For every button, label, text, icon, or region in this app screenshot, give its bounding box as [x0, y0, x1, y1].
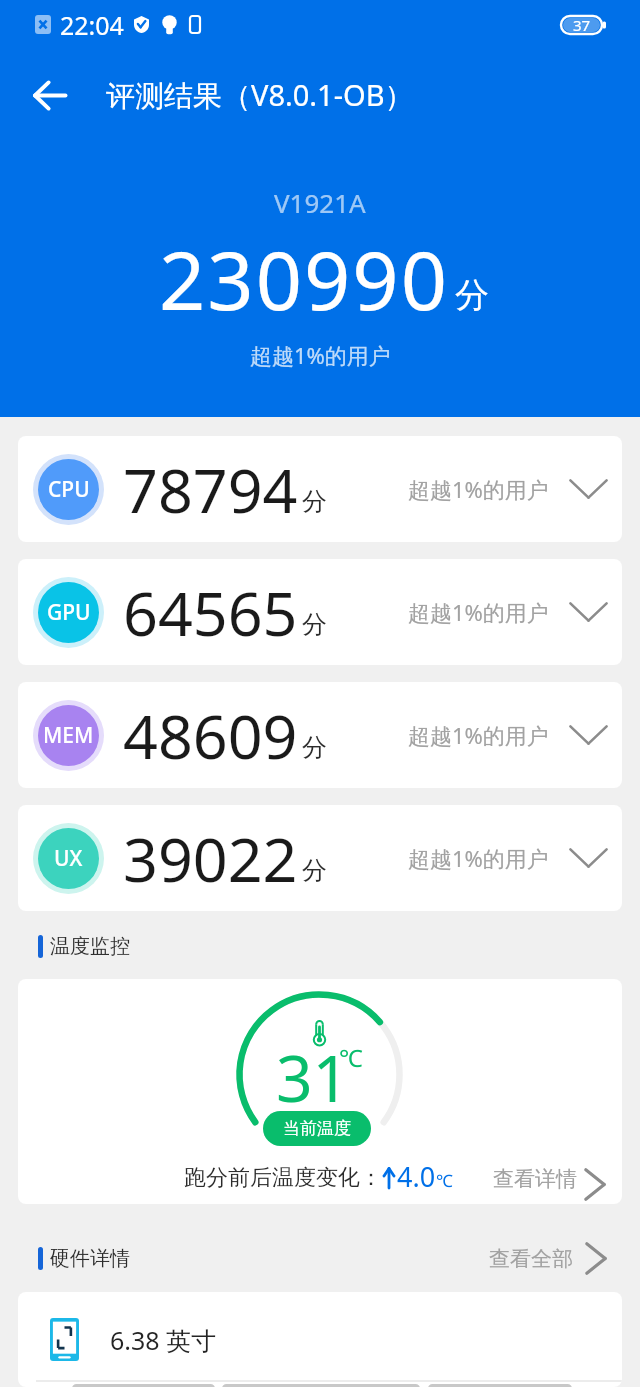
staticText: 超越1%的用户: [408, 843, 549, 873]
staticText: MEM: [43, 721, 94, 750]
staticText: 当前温度: [283, 1118, 351, 1139]
staticText: 温度监控: [50, 934, 130, 959]
staticText: 查看全部: [489, 1246, 573, 1272]
staticText: 超越1%的用户: [250, 340, 391, 370]
staticText: ℃: [339, 1041, 363, 1074]
button[interactable]: Expand: [566, 467, 610, 511]
staticText: 硬件详情: [50, 1246, 130, 1271]
button[interactable]: Back: [0, 56, 100, 134]
staticText: 分: [302, 609, 327, 640]
staticText: 分: [455, 274, 489, 317]
button[interactable]: Expand: [566, 590, 610, 634]
button[interactable]: 查看全部: [489, 1242, 607, 1275]
staticText: 230990: [159, 223, 449, 333]
staticText: 4.0: [397, 1158, 436, 1195]
button[interactable]: CPU: [18, 436, 622, 542]
button[interactable]: MEM: [18, 682, 622, 788]
staticText: 31: [276, 1034, 350, 1121]
staticText: 超越1%的用户: [408, 474, 549, 504]
button[interactable]: 当前温度: [263, 1111, 371, 1146]
staticText: 查看详情: [493, 1166, 577, 1192]
button[interactable]: Expand: [566, 836, 610, 880]
staticText: 48609: [123, 694, 298, 777]
staticText: 超越1%的用户: [408, 720, 549, 750]
staticText: 37: [573, 15, 591, 35]
staticText: UX: [54, 844, 83, 873]
staticText: 分: [302, 486, 327, 517]
staticText: 分: [302, 732, 327, 763]
button[interactable]: GPU: [18, 559, 622, 665]
staticText: 跑分前后温度变化：: [184, 1164, 382, 1192]
button[interactable]: 查看详情: [493, 1162, 606, 1195]
button[interactable]: UX: [18, 805, 622, 911]
staticText: GPU: [47, 598, 91, 627]
staticText: ℃: [436, 1169, 453, 1192]
staticText: 分: [302, 855, 327, 886]
staticText: 超越1%的用户: [408, 597, 549, 627]
staticText: 39022: [123, 817, 298, 900]
staticText: 6.38 英寸: [110, 1323, 217, 1357]
staticText: 78794: [123, 448, 298, 531]
button[interactable]: Expand: [566, 713, 610, 757]
staticText: V1921A: [274, 185, 366, 220]
staticText: 22:04: [60, 8, 124, 42]
staticText: 64565: [123, 571, 298, 654]
staticText: CPU: [48, 475, 90, 504]
button[interactable]: 6.38 英寸: [18, 1292, 622, 1387]
staticText: 评测结果（V8.0.1-OB）: [106, 75, 414, 115]
